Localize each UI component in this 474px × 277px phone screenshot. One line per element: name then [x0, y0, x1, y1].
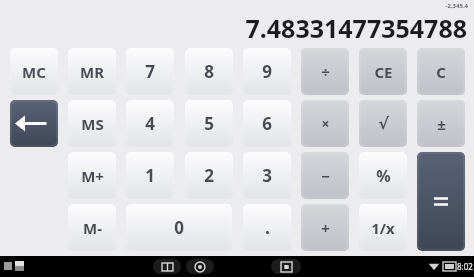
button[interactable]: 6	[243, 100, 291, 147]
button[interactable]: Equals	[417, 152, 465, 251]
staticText: 6	[262, 112, 272, 135]
staticText: 5	[204, 112, 214, 135]
button[interactable]: ÷	[301, 48, 349, 95]
staticText: 1	[145, 164, 155, 187]
button[interactable]: 8	[185, 48, 233, 95]
button[interactable]: Backspace	[10, 100, 58, 147]
staticText: .	[265, 216, 270, 239]
button[interactable]: 0	[126, 204, 232, 251]
staticText: 8	[204, 60, 214, 83]
staticText: M-	[83, 218, 102, 238]
button[interactable]: 1/x	[359, 204, 407, 251]
button[interactable]: 7	[126, 48, 174, 95]
staticText: MC	[22, 62, 46, 82]
button[interactable]: CE	[359, 48, 407, 95]
button[interactable]: 4	[126, 100, 174, 147]
staticText: -2,345.4	[445, 2, 468, 10]
button[interactable]: 9	[243, 48, 291, 95]
staticText: 4	[145, 112, 155, 135]
button[interactable]: Home	[271, 259, 301, 274]
button[interactable]: C	[417, 48, 465, 95]
staticText: MS	[81, 114, 104, 134]
staticText: 9	[262, 60, 272, 83]
button[interactable]: MC	[10, 48, 58, 95]
button[interactable]: %	[359, 152, 407, 199]
button[interactable]: 3	[243, 152, 291, 199]
button[interactable]: .	[243, 204, 291, 251]
button[interactable]: M-	[68, 204, 116, 251]
button[interactable]: +	[301, 204, 349, 251]
staticText: +	[321, 218, 330, 238]
staticText: 0	[174, 216, 184, 239]
button[interactable]: M+	[68, 152, 116, 199]
button[interactable]: ±	[417, 100, 465, 147]
button[interactable]: MR	[68, 48, 116, 95]
staticText: −	[321, 166, 330, 186]
button[interactable]: 5	[185, 100, 233, 147]
button[interactable]: 1	[126, 152, 174, 199]
staticText: %	[376, 165, 391, 187]
staticText: 2	[204, 164, 214, 187]
staticText: 1/x	[371, 218, 395, 238]
staticText: ÷	[321, 62, 330, 82]
staticText: ±	[437, 114, 446, 134]
staticText: M+	[81, 166, 104, 186]
staticText: 7.48331477354788	[245, 11, 467, 43]
button[interactable]: MS	[68, 100, 116, 147]
button[interactable]: Recents	[186, 259, 214, 274]
button[interactable]: Back	[153, 259, 181, 274]
staticText: 7	[145, 60, 155, 83]
staticText: √	[378, 114, 389, 133]
staticText: MR	[80, 62, 104, 82]
button[interactable]: 2	[185, 152, 233, 199]
button[interactable]: ×	[301, 100, 349, 147]
staticText: 3	[262, 164, 272, 187]
button[interactable]: √	[359, 100, 407, 147]
staticText: 8:02	[457, 261, 473, 272]
staticText: ×	[321, 114, 330, 133]
button[interactable]: −	[301, 152, 349, 199]
staticText: CE	[374, 62, 393, 82]
staticText: C	[436, 62, 446, 82]
